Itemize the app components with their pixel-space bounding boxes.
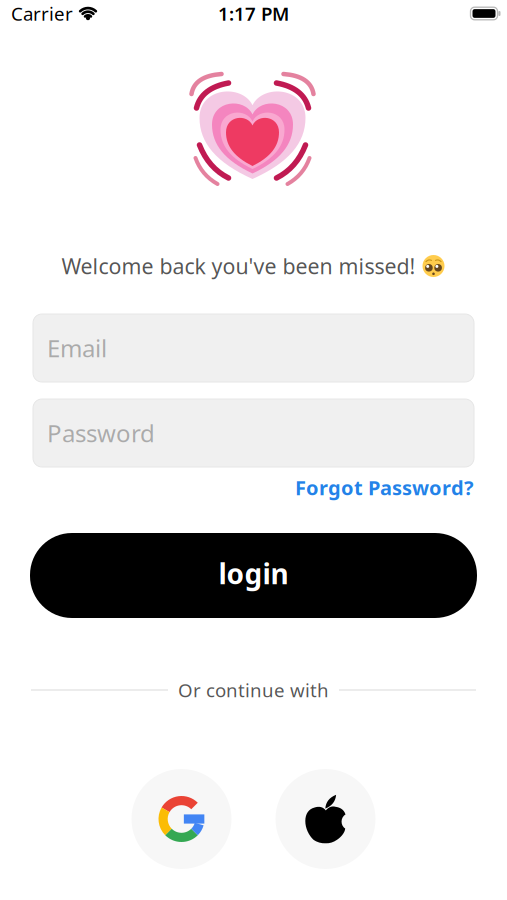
button[interactable]: Email xyxy=(33,314,474,382)
button[interactable]: Forgot Password? xyxy=(295,474,474,501)
staticText: Password xyxy=(47,417,155,449)
staticText: Email xyxy=(47,332,107,364)
staticText: 1:17 PM xyxy=(218,1,289,26)
staticText: Welcome back you've been missed! xyxy=(61,252,415,280)
button[interactable]: login xyxy=(30,533,477,618)
staticText: login xyxy=(218,555,288,592)
button[interactable]: Continue with Apple xyxy=(275,769,375,869)
staticText: Forgot Password? xyxy=(295,474,474,501)
staticText: Or continue with xyxy=(178,678,329,702)
button[interactable]: Password xyxy=(33,399,474,467)
button[interactable]: Continue with Google xyxy=(131,769,231,869)
staticText: Carrier xyxy=(11,1,73,26)
